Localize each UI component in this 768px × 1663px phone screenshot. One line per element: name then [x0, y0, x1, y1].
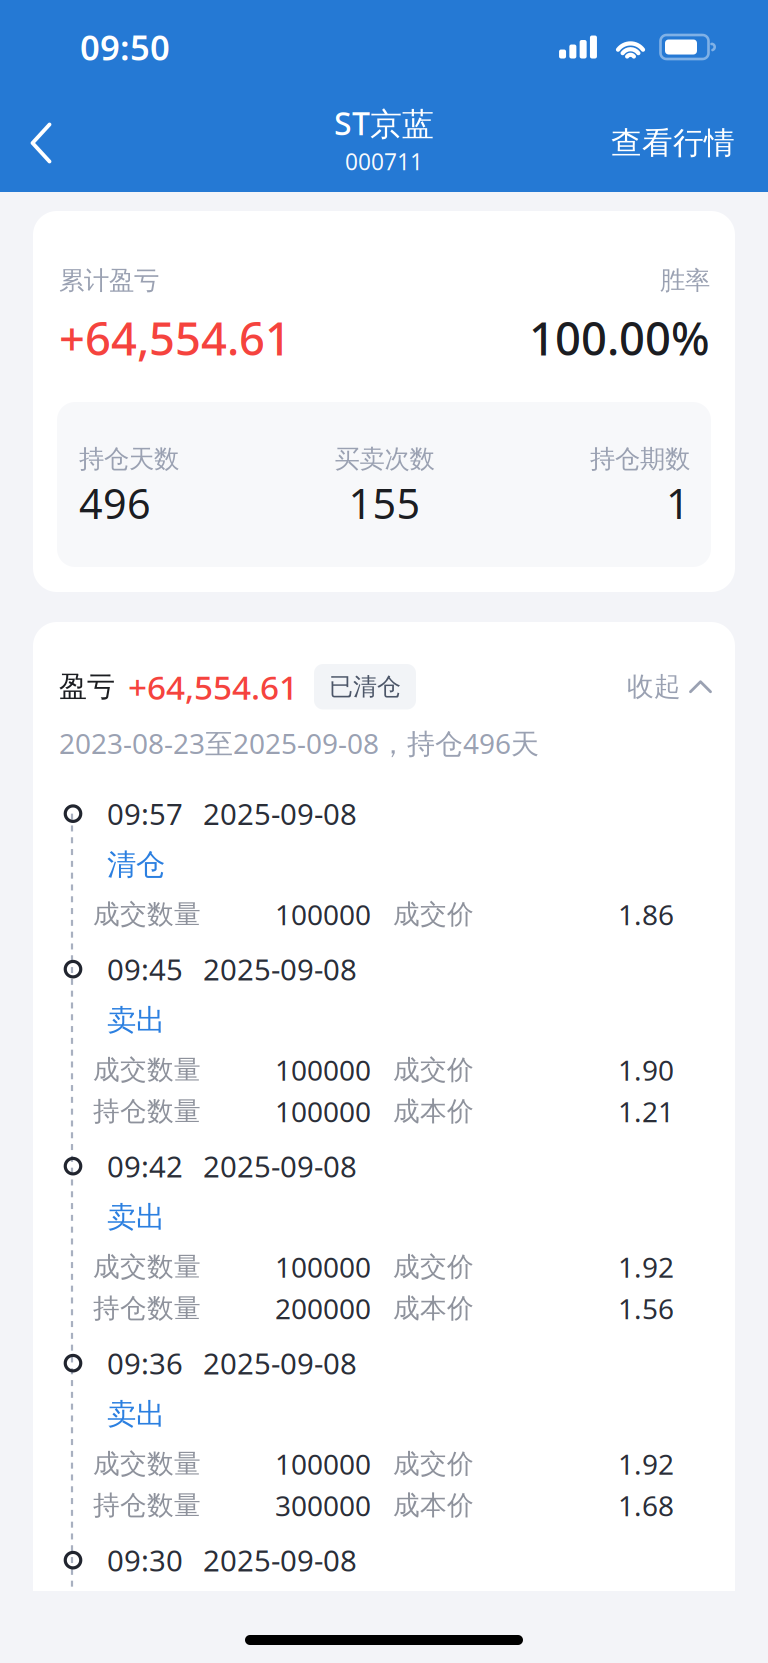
staticText: 155: [348, 476, 420, 530]
staticText: 成本价: [393, 1489, 474, 1522]
staticText: 1.92: [618, 1445, 674, 1482]
staticText: 09:45: [107, 950, 183, 989]
staticText: 1.56: [618, 1290, 674, 1327]
staticText: 2025-09-08: [203, 794, 357, 833]
staticText: 成交价: [393, 1053, 474, 1086]
staticText: 09:36: [107, 1344, 183, 1383]
staticText: 1: [666, 476, 690, 530]
staticText: +64,554.61: [128, 665, 298, 709]
staticText: 持仓天数: [79, 443, 179, 474]
staticText: 09:30: [107, 1541, 183, 1580]
staticText: 100000: [275, 1051, 371, 1088]
staticText: 清仓: [107, 847, 165, 883]
staticText: 胜率: [660, 265, 710, 296]
staticText: 1.86: [618, 896, 674, 933]
staticText: 成交数量: [93, 1250, 201, 1283]
staticText: 496: [79, 476, 151, 530]
staticText: 成交数量: [93, 898, 201, 931]
staticText: 100000: [275, 1445, 371, 1482]
staticText: 成交价: [393, 1447, 474, 1480]
staticText: 成交价: [393, 1250, 474, 1283]
staticText: 2025-09-08: [203, 1541, 357, 1580]
staticText: 1.68: [618, 1487, 674, 1524]
staticText: 买卖次数: [334, 443, 434, 474]
staticText: 累计盈亏: [59, 265, 159, 296]
staticText: 1.92: [618, 1248, 674, 1285]
staticText: 持仓数量: [93, 1292, 201, 1325]
staticText: 持仓期数: [590, 443, 690, 474]
staticText: 卖出: [107, 1199, 165, 1235]
staticText: 成交数量: [93, 1447, 201, 1480]
staticText: 1.21: [618, 1093, 674, 1130]
staticText: 成交数量: [93, 1053, 201, 1086]
staticText: 盈亏: [59, 669, 115, 704]
staticText: 2023-08-23至2025-09-08，持仓496天: [59, 724, 539, 762]
staticText: 200000: [275, 1290, 371, 1327]
staticText: 成本价: [393, 1095, 474, 1128]
staticText: 2025-09-08: [203, 950, 357, 989]
button[interactable]: 返回: [0, 94, 82, 192]
staticText: 100000: [275, 1093, 371, 1130]
staticText: 已清仓: [329, 672, 401, 701]
staticText: 卖出: [107, 1002, 165, 1038]
button[interactable]: 查看行情: [593, 94, 768, 192]
staticText: 成交价: [393, 898, 474, 931]
staticText: +64,554.61: [59, 308, 291, 368]
staticText: 持仓数量: [93, 1489, 201, 1522]
staticText: 1.90: [618, 1051, 674, 1088]
staticText: 000711: [345, 146, 423, 176]
staticText: 2025-09-08: [203, 1147, 357, 1186]
staticText: 300000: [275, 1487, 371, 1524]
staticText: ST京蓝: [334, 102, 434, 144]
staticText: 100000: [275, 1248, 371, 1285]
staticText: 成本价: [393, 1292, 474, 1325]
staticText: 09:57: [107, 794, 183, 833]
staticText: 100.00%: [529, 308, 710, 368]
staticText: 09:50: [80, 24, 170, 70]
staticText: 持仓数量: [93, 1095, 201, 1128]
button[interactable]: 收起: [627, 670, 709, 703]
staticText: 2025-09-08: [203, 1344, 357, 1383]
staticText: 查看行情: [611, 124, 735, 162]
staticText: 收起: [627, 670, 681, 703]
staticText: 100000: [275, 896, 371, 933]
staticText: 卖出: [107, 1396, 165, 1432]
staticText: 09:42: [107, 1147, 183, 1186]
